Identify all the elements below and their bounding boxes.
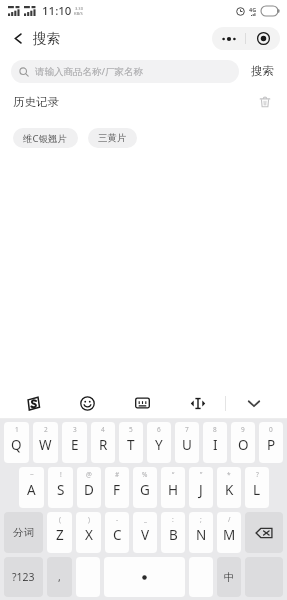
button[interactable]: #	[105, 467, 129, 508]
staticText: 11:10	[42, 3, 72, 19]
button[interactable]: 请输入商品名称/厂家名称	[11, 60, 239, 83]
button[interactable]: /	[217, 512, 241, 553]
other: Back	[13, 33, 24, 44]
button[interactable]: 0	[259, 422, 283, 463]
button[interactable]: (	[47, 512, 72, 553]
button[interactable]: Hide keyboard	[226, 387, 281, 419]
staticText: C	[113, 526, 122, 544]
button[interactable]: 三黄片	[88, 128, 137, 148]
button[interactable]: 中	[217, 557, 241, 597]
staticText: K	[225, 481, 234, 499]
staticText: :	[172, 515, 174, 524]
button[interactable]: Backspace	[245, 512, 283, 553]
button[interactable]: Back	[9, 26, 64, 51]
button[interactable]: 2	[33, 422, 58, 463]
staticText: L	[253, 481, 261, 499]
button[interactable]: !	[48, 467, 73, 508]
staticText: S	[57, 481, 65, 499]
staticText: 搜索	[33, 30, 60, 47]
staticText: U	[182, 436, 192, 454]
staticText: B	[169, 526, 178, 544]
staticText: J	[199, 481, 203, 499]
staticText: 4	[101, 425, 105, 434]
staticText: ?	[256, 470, 259, 479]
staticText: X	[85, 526, 93, 544]
staticText: W	[39, 436, 52, 454]
staticText: *	[227, 470, 231, 479]
button[interactable]: %	[133, 467, 157, 508]
button[interactable]: More	[212, 27, 245, 50]
button[interactable]: 8	[203, 422, 227, 463]
button[interactable]: Move cursor	[170, 387, 225, 419]
staticText: H	[168, 481, 179, 499]
button[interactable]: :	[161, 512, 185, 553]
staticText: @	[86, 470, 92, 479]
staticText: 三黄片	[98, 132, 127, 144]
button[interactable]: Emoji	[60, 387, 115, 419]
staticText: -	[116, 515, 119, 524]
staticText: Q	[11, 436, 22, 454]
button[interactable]: “	[161, 467, 185, 508]
staticText: ,	[58, 570, 61, 584]
button[interactable]: 6	[147, 422, 171, 463]
button[interactable]: Keyboard layout	[115, 387, 170, 419]
staticText: _	[144, 515, 147, 524]
button[interactable]: Clear history	[256, 93, 274, 111]
button[interactable]: 维C银翘片	[13, 128, 78, 148]
button[interactable]: Space	[104, 557, 185, 597]
button[interactable]: 1	[4, 422, 29, 463]
staticText: M	[223, 526, 236, 544]
button[interactable]: 7	[175, 422, 199, 463]
button[interactable]: Close	[246, 27, 280, 50]
button[interactable]: _	[133, 512, 157, 553]
staticText: T	[127, 436, 135, 454]
button[interactable]: 分词	[4, 512, 43, 553]
button[interactable]: 9	[231, 422, 255, 463]
staticText: 3	[73, 425, 77, 434]
button[interactable]: ,	[47, 557, 72, 597]
staticText: !	[60, 470, 62, 479]
staticText: D	[84, 481, 94, 499]
button[interactable]: 5	[119, 422, 143, 463]
staticText: 3.30	[75, 6, 83, 11]
button[interactable]: ?123	[4, 557, 43, 597]
staticText: ”	[200, 470, 203, 479]
button[interactable]: *	[217, 467, 241, 508]
staticText: 1	[15, 425, 19, 434]
staticText: 5	[129, 425, 133, 434]
staticText: 4G	[249, 6, 257, 13]
button[interactable]: @	[77, 467, 101, 508]
staticText: P	[267, 436, 276, 454]
staticText: G	[140, 481, 150, 499]
staticText: E	[71, 436, 79, 454]
button[interactable]: 搜索	[249, 62, 276, 80]
button[interactable]: 4	[91, 422, 115, 463]
staticText: 搜索	[251, 64, 274, 78]
staticText: I	[213, 436, 218, 454]
staticText: /	[228, 515, 231, 524]
staticText: Z	[56, 526, 64, 544]
button[interactable]: ?	[245, 467, 269, 508]
staticText: A	[27, 481, 36, 499]
button[interactable]: ”	[189, 467, 213, 508]
staticText: 历史记录	[13, 95, 59, 109]
button[interactable]: Sogou IME	[6, 387, 60, 419]
button[interactable]: 3	[62, 422, 87, 463]
button[interactable]: ~	[19, 467, 44, 508]
staticText: R	[99, 436, 108, 454]
button[interactable]: ;	[189, 512, 213, 553]
staticText: 请输入商品名称/厂家名称	[35, 65, 144, 78]
staticText: 7	[185, 425, 189, 434]
staticText: #	[115, 470, 120, 479]
button[interactable]: -	[105, 512, 129, 553]
staticText: 中	[224, 571, 235, 584]
button[interactable]: )	[76, 512, 101, 553]
staticText: N	[196, 526, 207, 544]
staticText: 分词	[13, 526, 34, 539]
staticText: (	[59, 515, 61, 524]
staticText: %	[142, 470, 148, 479]
staticText: ;	[200, 515, 202, 524]
